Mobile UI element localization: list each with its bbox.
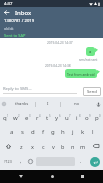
staticText: Test from android: [67, 72, 95, 76]
staticText: ?123: [4, 159, 12, 164]
staticText: ,: [20, 158, 22, 165]
staticText: o: [85, 114, 89, 122]
button[interactable]: i: [73, 111, 83, 125]
staticText: w: [13, 114, 18, 122]
staticText: thanks: [15, 101, 29, 107]
staticText: 2019-04-23 14:37: [47, 41, 73, 45]
button[interactable]: c: [38, 139, 48, 153]
button[interactable]: g: [48, 125, 58, 139]
button[interactable]: h: [58, 125, 68, 139]
button[interactable]: Test from android: [65, 69, 97, 78]
button[interactable]: Emoji: [25, 153, 35, 170]
staticText: g: [51, 128, 55, 136]
button[interactable]: s: [17, 125, 28, 139]
staticText: 6: [59, 114, 61, 118]
button[interactable]: f: [38, 125, 48, 139]
staticText: c: [42, 143, 45, 150]
staticText: d: [31, 128, 35, 136]
button[interactable]: u: [63, 111, 73, 125]
staticText: 1: [7, 114, 9, 118]
button[interactable]: o: [83, 111, 93, 125]
button[interactable]: z: [16, 139, 27, 153]
staticText: r: [36, 114, 39, 122]
staticText: Inbox: [15, 9, 32, 17]
button[interactable]: Backspace: [88, 139, 103, 153]
button[interactable]: Home: [42, 170, 62, 183]
button[interactable]: no: [61, 97, 93, 111]
staticText: 0: [99, 114, 101, 118]
staticText: a: [89, 49, 92, 54]
button[interactable]: Back: [0, 7, 13, 18]
button[interactable]: a: [6, 125, 17, 139]
staticText: f: [42, 128, 45, 136]
staticText: 2: [18, 114, 20, 118]
button[interactable]: Back: [11, 170, 31, 183]
button[interactable]: I: [36, 97, 60, 111]
staticText: m: [80, 143, 86, 150]
staticText: k: [81, 128, 85, 136]
button[interactable]: Voice input: [93, 97, 103, 111]
staticText: h: [61, 128, 65, 136]
staticText: y: [55, 114, 59, 122]
staticText: Send: [87, 89, 97, 95]
button[interactable]: .: [76, 153, 86, 170]
button[interactable]: x: [27, 139, 38, 153]
button[interactable]: m: [78, 139, 88, 153]
button[interactable]: q: [0, 111, 11, 125]
staticText: Reply to SMS...: [3, 86, 32, 92]
button[interactable]: ?123: [0, 153, 16, 170]
staticText: q: [3, 114, 7, 122]
staticText: a: [10, 128, 14, 136]
staticText: no: [74, 101, 80, 107]
staticText: p: [95, 114, 99, 122]
staticText: 1380781 / 2019: [4, 18, 35, 24]
button[interactable]: j: [68, 125, 78, 139]
button[interactable]: ,: [16, 153, 25, 170]
staticText: b: [61, 143, 65, 150]
staticText: 3: [29, 114, 31, 118]
staticText: i: [76, 114, 78, 122]
staticText: ok/ok: [4, 26, 14, 31]
staticText: 5: [49, 114, 51, 118]
staticText: .: [80, 158, 82, 165]
button[interactable]: Enter: [90, 157, 100, 167]
staticText: sms/not sent: [79, 58, 98, 62]
staticText: 7: [69, 114, 71, 118]
staticText: 2019-04-23 14:38: [45, 64, 71, 68]
button[interactable]: l: [88, 125, 98, 139]
staticText: s: [21, 128, 24, 136]
button[interactable]: k: [78, 125, 88, 139]
staticText: 8: [79, 114, 81, 118]
button[interactable]: p: [93, 111, 103, 125]
button[interactable]: thanks: [8, 97, 35, 111]
staticText: t: [46, 114, 49, 122]
staticText: I: [47, 101, 49, 107]
button[interactable]: w: [11, 111, 22, 125]
staticText: j: [72, 128, 74, 136]
staticText: v: [52, 143, 55, 150]
button[interactable]: a: [86, 47, 95, 56]
staticText: 9: [89, 114, 91, 118]
button[interactable]: t: [43, 111, 53, 125]
staticText: 4: [39, 114, 41, 118]
button[interactable]: Send: [83, 87, 101, 96]
button[interactable]: y: [53, 111, 63, 125]
button[interactable]: v: [48, 139, 58, 153]
button[interactable]: Shift: [0, 139, 16, 153]
button[interactable]: n: [68, 139, 78, 153]
button[interactable]: d: [28, 125, 38, 139]
button[interactable]: Expand suggestions: [0, 97, 8, 111]
staticText: Sent to SAP: [4, 33, 26, 38]
staticText: 4:37: [4, 1, 13, 7]
staticText: n: [71, 143, 75, 150]
button[interactable]: e: [22, 111, 33, 125]
button[interactable]: r: [33, 111, 43, 125]
staticText: x: [31, 143, 34, 150]
staticText: e: [25, 114, 29, 122]
staticText: l: [92, 128, 94, 136]
button[interactable]: Recents: [72, 170, 92, 183]
button[interactable]: b: [58, 139, 68, 153]
staticText: z: [20, 143, 23, 150]
staticText: u: [65, 114, 69, 122]
